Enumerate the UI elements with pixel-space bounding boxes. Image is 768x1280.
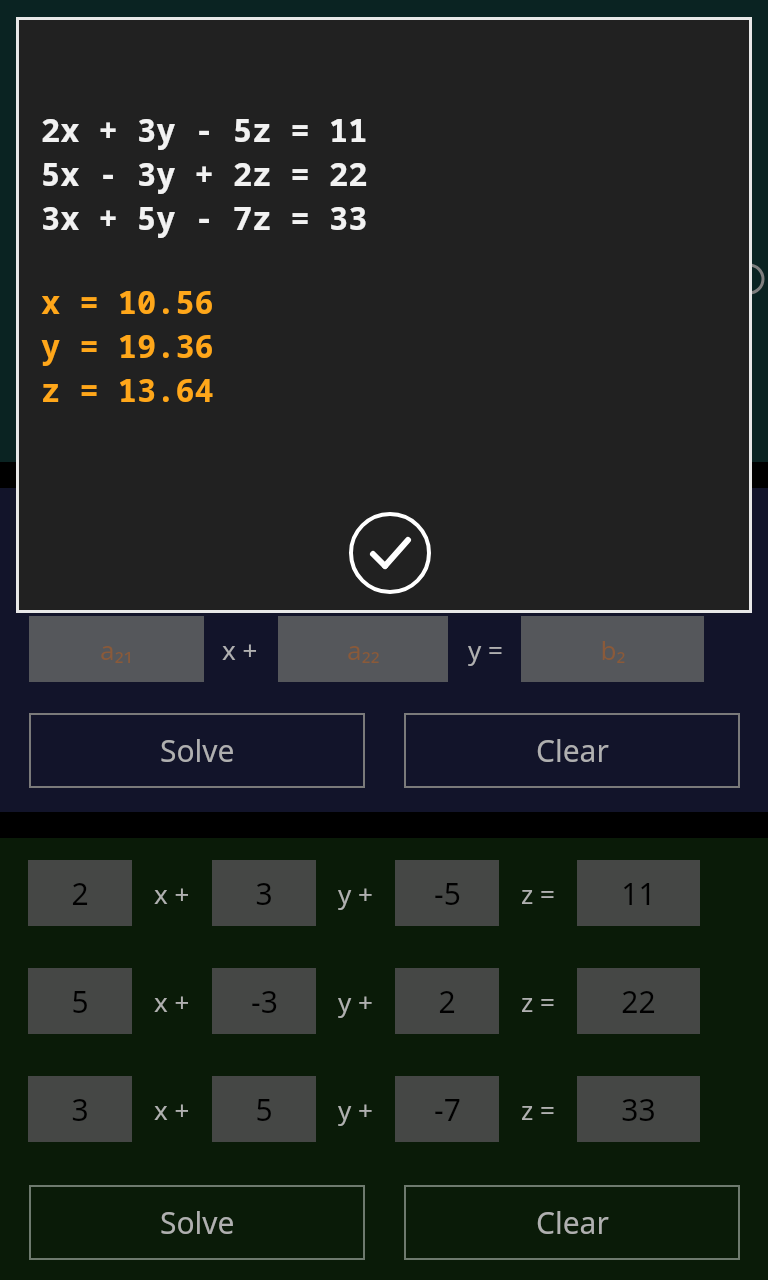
staticText: Solve bbox=[160, 730, 235, 771]
staticText: Solve bbox=[160, 1202, 235, 1243]
staticText: z = 13.64 bbox=[41, 368, 214, 412]
button[interactable]: 5 bbox=[212, 1076, 316, 1142]
staticText: x + bbox=[154, 984, 190, 1019]
button[interactable]: -7 bbox=[395, 1076, 499, 1142]
button[interactable]: 3 bbox=[28, 1076, 132, 1142]
staticText: -5 bbox=[434, 873, 461, 914]
staticText: 5 bbox=[255, 1089, 273, 1130]
button[interactable]: Solve bbox=[29, 1185, 365, 1260]
button[interactable]: b₂ bbox=[521, 616, 704, 682]
button[interactable]: -5 bbox=[395, 860, 499, 926]
staticText: b₂ bbox=[600, 632, 626, 667]
staticText: 11 bbox=[621, 873, 656, 914]
staticText: -3 bbox=[251, 981, 278, 1022]
staticText: z = bbox=[521, 876, 555, 911]
staticText: y + bbox=[338, 876, 373, 911]
staticText: x = 10.56 bbox=[41, 280, 214, 324]
staticText: x + bbox=[154, 1092, 190, 1127]
staticText: y = 19.36 bbox=[41, 324, 214, 368]
staticText: a₂₂ bbox=[347, 632, 380, 667]
staticText: z = bbox=[521, 1092, 555, 1127]
button[interactable]: Solve bbox=[29, 713, 365, 788]
staticText: y + bbox=[338, 1092, 373, 1127]
staticText: 5 bbox=[71, 981, 89, 1022]
staticText: 2x + 3y - 5z = 11 bbox=[41, 108, 368, 152]
staticText: -7 bbox=[434, 1089, 461, 1130]
staticText: 3 bbox=[71, 1089, 89, 1130]
staticText: 22 bbox=[621, 981, 656, 1022]
staticText: 2 bbox=[438, 981, 456, 1022]
staticText: 3x + 5y - 7z = 33 bbox=[41, 196, 368, 240]
button[interactable]: -3 bbox=[212, 968, 316, 1034]
button[interactable]: Clear bbox=[404, 1185, 740, 1260]
staticText: 5x - 3y + 2z = 22 bbox=[41, 152, 368, 196]
button[interactable]: a₂₂ bbox=[278, 616, 448, 682]
button[interactable]: OK bbox=[347, 510, 433, 596]
staticText: 33 bbox=[621, 1089, 656, 1130]
staticText: 2 bbox=[71, 873, 89, 914]
staticText: y + bbox=[338, 984, 373, 1019]
button[interactable]: 22 bbox=[577, 968, 700, 1034]
staticText: z = bbox=[521, 984, 555, 1019]
staticText: x + bbox=[154, 876, 190, 911]
button[interactable]: Clear bbox=[404, 713, 740, 788]
button[interactable]: 3 bbox=[212, 860, 316, 926]
staticText: Clear bbox=[536, 1202, 609, 1243]
button[interactable]: 2 bbox=[28, 860, 132, 926]
button[interactable]: 2 bbox=[395, 968, 499, 1034]
button[interactable]: 5 bbox=[28, 968, 132, 1034]
button[interactable]: 11 bbox=[577, 860, 700, 926]
button[interactable]: 33 bbox=[577, 1076, 700, 1142]
staticText: Clear bbox=[536, 730, 609, 771]
staticText: y = bbox=[468, 632, 503, 667]
staticText: a₂₁ bbox=[100, 632, 133, 667]
staticText: x + bbox=[222, 632, 258, 667]
button[interactable]: a₂₁ bbox=[29, 616, 204, 682]
staticText: 3 bbox=[255, 873, 273, 914]
